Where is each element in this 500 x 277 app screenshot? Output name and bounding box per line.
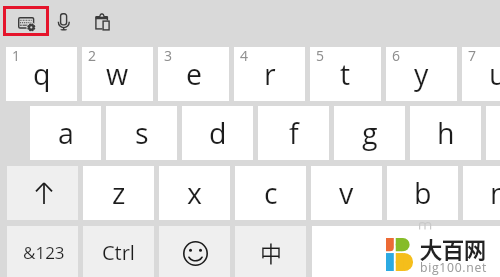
staticText: b bbox=[414, 174, 432, 213]
staticText: c bbox=[264, 174, 278, 213]
staticText: 7 bbox=[468, 46, 477, 65]
button[interactable] bbox=[312, 226, 500, 277]
staticText: 2 bbox=[88, 46, 97, 65]
staticText: r bbox=[264, 55, 276, 94]
staticText: n bbox=[490, 174, 500, 213]
staticText: a bbox=[58, 114, 74, 153]
button[interactable]: 2 bbox=[82, 47, 153, 101]
button[interactable]: Keyboard settings bbox=[3, 6, 49, 36]
button[interactable]: c bbox=[235, 166, 306, 220]
staticText: &123 bbox=[23, 241, 65, 264]
staticText: f bbox=[289, 114, 299, 153]
button[interactable]: z bbox=[83, 166, 154, 220]
button[interactable]: Clipboard bbox=[92, 8, 114, 34]
staticText: 中 bbox=[260, 236, 283, 268]
staticText: d bbox=[209, 114, 227, 153]
button[interactable]: d bbox=[182, 106, 253, 160]
button[interactable]: v bbox=[311, 166, 382, 220]
staticText: z bbox=[112, 174, 126, 213]
staticText: g bbox=[362, 114, 378, 153]
button[interactable]: s bbox=[106, 106, 177, 160]
button[interactable]: b bbox=[387, 166, 458, 220]
button[interactable]: 中 bbox=[235, 226, 306, 277]
button[interactable]: a bbox=[30, 106, 101, 160]
button[interactable]: &123 bbox=[7, 226, 78, 277]
button[interactable]: 7 bbox=[462, 47, 500, 101]
button[interactable]: 5 bbox=[310, 47, 381, 101]
staticText: 3 bbox=[164, 46, 173, 65]
button[interactable]: f bbox=[258, 106, 329, 160]
button[interactable]: x bbox=[159, 166, 230, 220]
staticText: y bbox=[414, 55, 429, 94]
staticText: x bbox=[187, 174, 202, 213]
button[interactable]: n bbox=[463, 166, 500, 220]
staticText: big100.net bbox=[420, 259, 487, 276]
staticText: 6 bbox=[392, 46, 401, 65]
staticText: v bbox=[339, 174, 354, 213]
staticText: 1 bbox=[12, 46, 21, 65]
button[interactable]: 6 bbox=[386, 47, 457, 101]
staticText: u bbox=[489, 55, 500, 94]
button[interactable]: Shift bbox=[7, 166, 78, 220]
staticText: q bbox=[33, 55, 51, 94]
button[interactable]: 3 bbox=[158, 47, 229, 101]
staticText: 5 bbox=[316, 46, 325, 65]
button[interactable]: Emoji bbox=[159, 226, 230, 277]
button[interactable]: h bbox=[410, 106, 481, 160]
button[interactable]: 1 bbox=[6, 47, 77, 101]
staticText: h bbox=[437, 114, 455, 153]
button[interactable]: Voice input bbox=[55, 8, 75, 34]
staticText: 大百网 bbox=[420, 232, 487, 264]
staticText: w bbox=[106, 55, 129, 94]
button[interactable]: g bbox=[334, 106, 405, 160]
staticText: e bbox=[186, 55, 202, 94]
staticText: 4 bbox=[240, 46, 249, 65]
button[interactable]: 4 bbox=[234, 47, 305, 101]
button[interactable]: Ctrl bbox=[83, 226, 154, 277]
staticText: s bbox=[135, 114, 149, 153]
staticText: t bbox=[340, 55, 351, 94]
staticText: Ctrl bbox=[102, 239, 135, 266]
